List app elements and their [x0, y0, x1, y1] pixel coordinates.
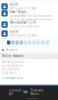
button[interactable]: Filter [28, 40, 31, 44]
button[interactable]: Guild [0, 2, 58, 11]
button[interactable]: Filter [45, 40, 49, 44]
staticText: Rate! Single [10, 10, 27, 14]
button[interactable]: Customize sets [0, 74, 58, 80]
staticText: 4 [52, 65, 53, 67]
staticText: Guild [10, 3, 18, 6]
staticText: Monday Email 12:41 [10, 21, 37, 24]
button[interactable]: Filter [15, 40, 19, 44]
button[interactable]: Rate! Single [0, 11, 58, 20]
staticText: Terms and Notes [30, 89, 43, 96]
button[interactable]: Filter [24, 40, 27, 44]
button[interactable]: Filter [20, 40, 23, 44]
button[interactable]: Filter [41, 40, 44, 44]
staticText: couple of sentences [10, 25, 39, 28]
staticText: Monday at 9:58 AM [10, 7, 36, 10]
staticText: Rooms Active [2, 67, 20, 71]
staticText: Monday at 8:00 AM [10, 34, 36, 37]
staticText: Online Statistics [2, 54, 23, 58]
staticText: 12 [51, 61, 53, 63]
button[interactable]: Monday Email 12:41 [0, 20, 58, 29]
staticText: Customize sets [2, 76, 22, 80]
staticText: Guest [10, 30, 18, 33]
button[interactable]: Filter [11, 40, 14, 44]
button[interactable]: Filter [7, 40, 10, 44]
staticText: Mail [23, 90, 28, 94]
button[interactable]: Filter [36, 40, 40, 44]
staticText: Members [6, 48, 18, 52]
button[interactable]: Filter [32, 40, 35, 44]
button[interactable]: Guest [0, 29, 58, 38]
staticText: Connect All [9, 89, 21, 96]
staticText: 8 [52, 68, 53, 70]
staticText: Members Online [2, 60, 25, 64]
staticText: Analytics comes [26, 98, 37, 100]
staticText: couple of sentences of string [10, 18, 52, 22]
staticText: Guests Added [2, 64, 22, 67]
staticText: Total Open [2, 71, 17, 74]
staticText: Sunday Email: for the sentence [10, 14, 52, 18]
